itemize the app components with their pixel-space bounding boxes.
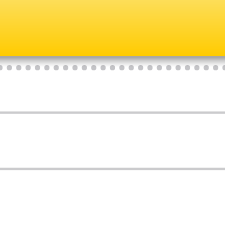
button[interactable]: Note body: [0, 0, 225, 225]
button[interactable]: Note title card: [0, 0, 225, 80]
